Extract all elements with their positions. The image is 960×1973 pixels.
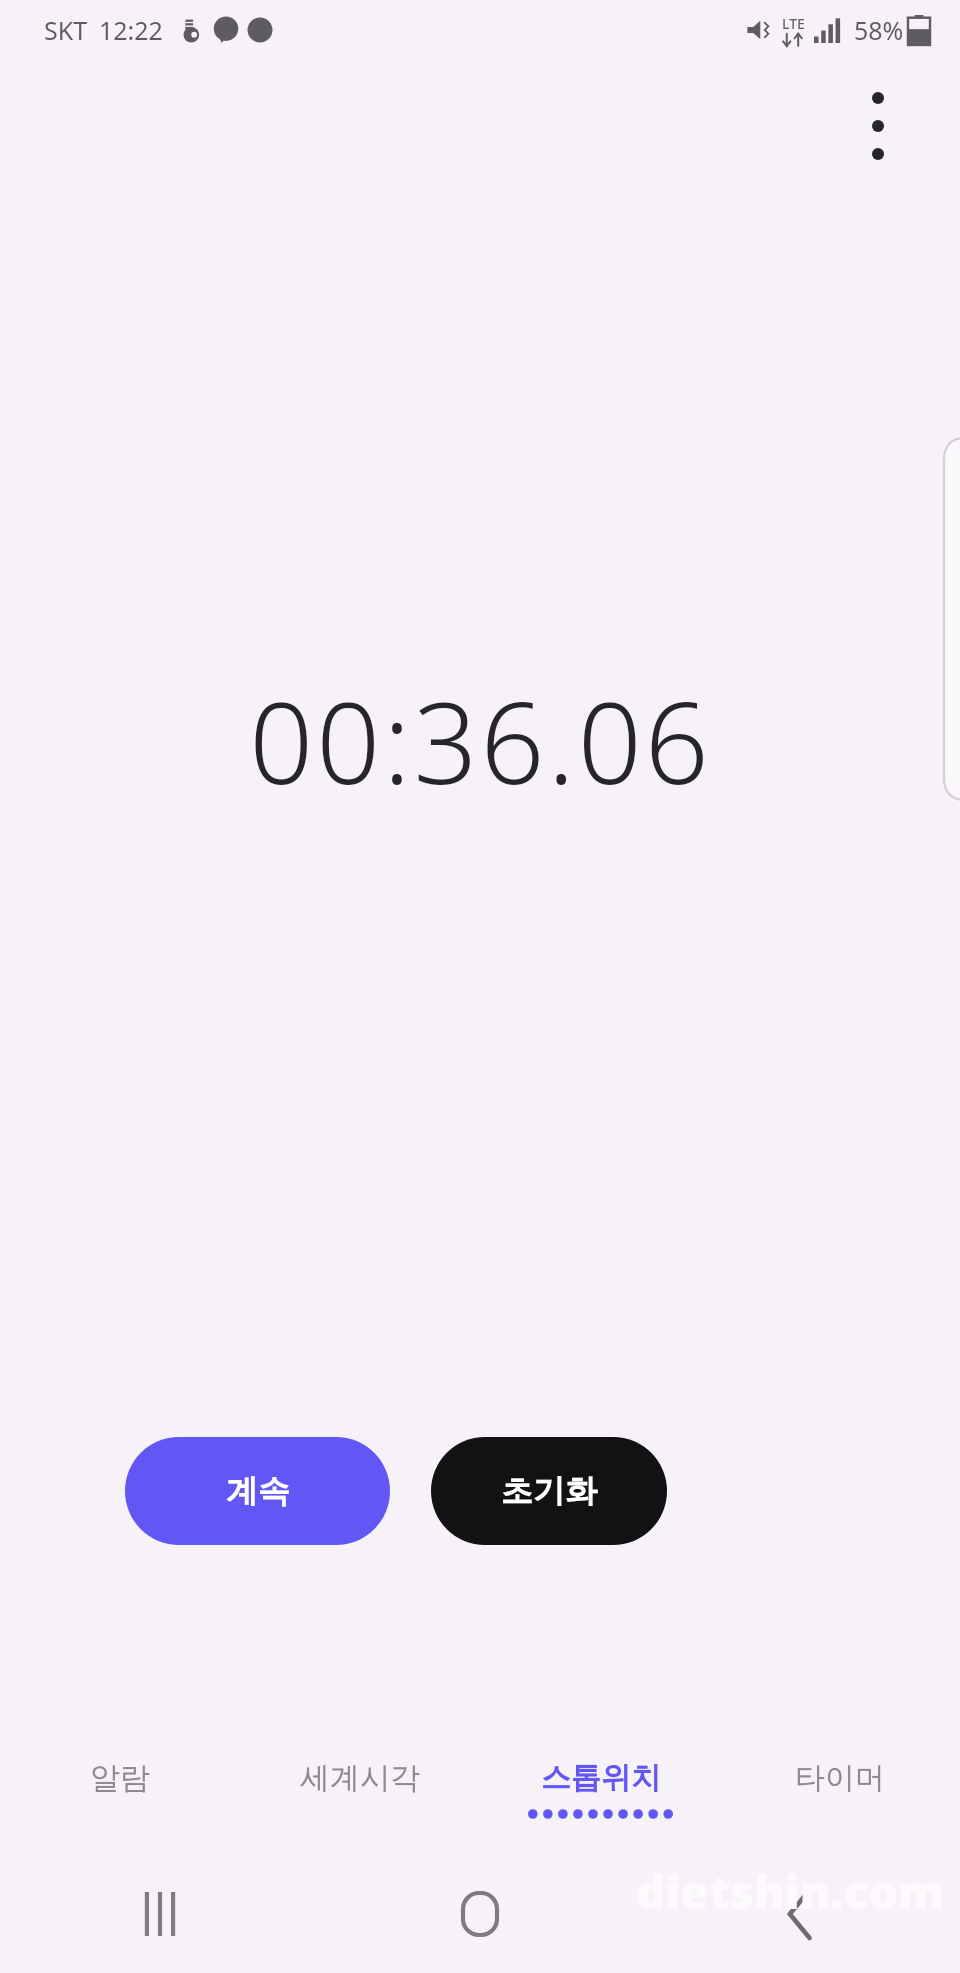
staticText: 12:22 <box>99 13 163 47</box>
button[interactable]: 세계시각 <box>240 1735 480 1845</box>
staticText: 계속 <box>226 1471 290 1511</box>
button[interactable]: Home <box>320 1855 640 1973</box>
staticText: 알람 <box>90 1759 150 1797</box>
button[interactable]: More options <box>842 62 914 190</box>
staticText: 스톱위치 <box>541 1759 661 1797</box>
staticText: 타이머 <box>795 1759 885 1797</box>
button[interactable]: 초기화 <box>431 1437 667 1545</box>
staticText: 00:36.06 <box>249 664 712 817</box>
button[interactable]: 타이머 <box>720 1735 960 1845</box>
staticText: SKT <box>44 13 88 47</box>
staticText: 세계시각 <box>300 1759 420 1797</box>
button[interactable]: Recent apps <box>0 1855 320 1973</box>
staticText: 초기화 <box>501 1471 597 1511</box>
button[interactable]: Back <box>640 1855 960 1973</box>
staticText: 58% <box>854 13 904 47</box>
staticText: dietshin.com <box>636 1860 944 1923</box>
button[interactable]: 스톱위치 <box>480 1735 720 1845</box>
button[interactable]: 알람 <box>0 1735 240 1845</box>
button[interactable]: 계속 <box>125 1437 390 1545</box>
staticText: LTE <box>782 14 805 33</box>
